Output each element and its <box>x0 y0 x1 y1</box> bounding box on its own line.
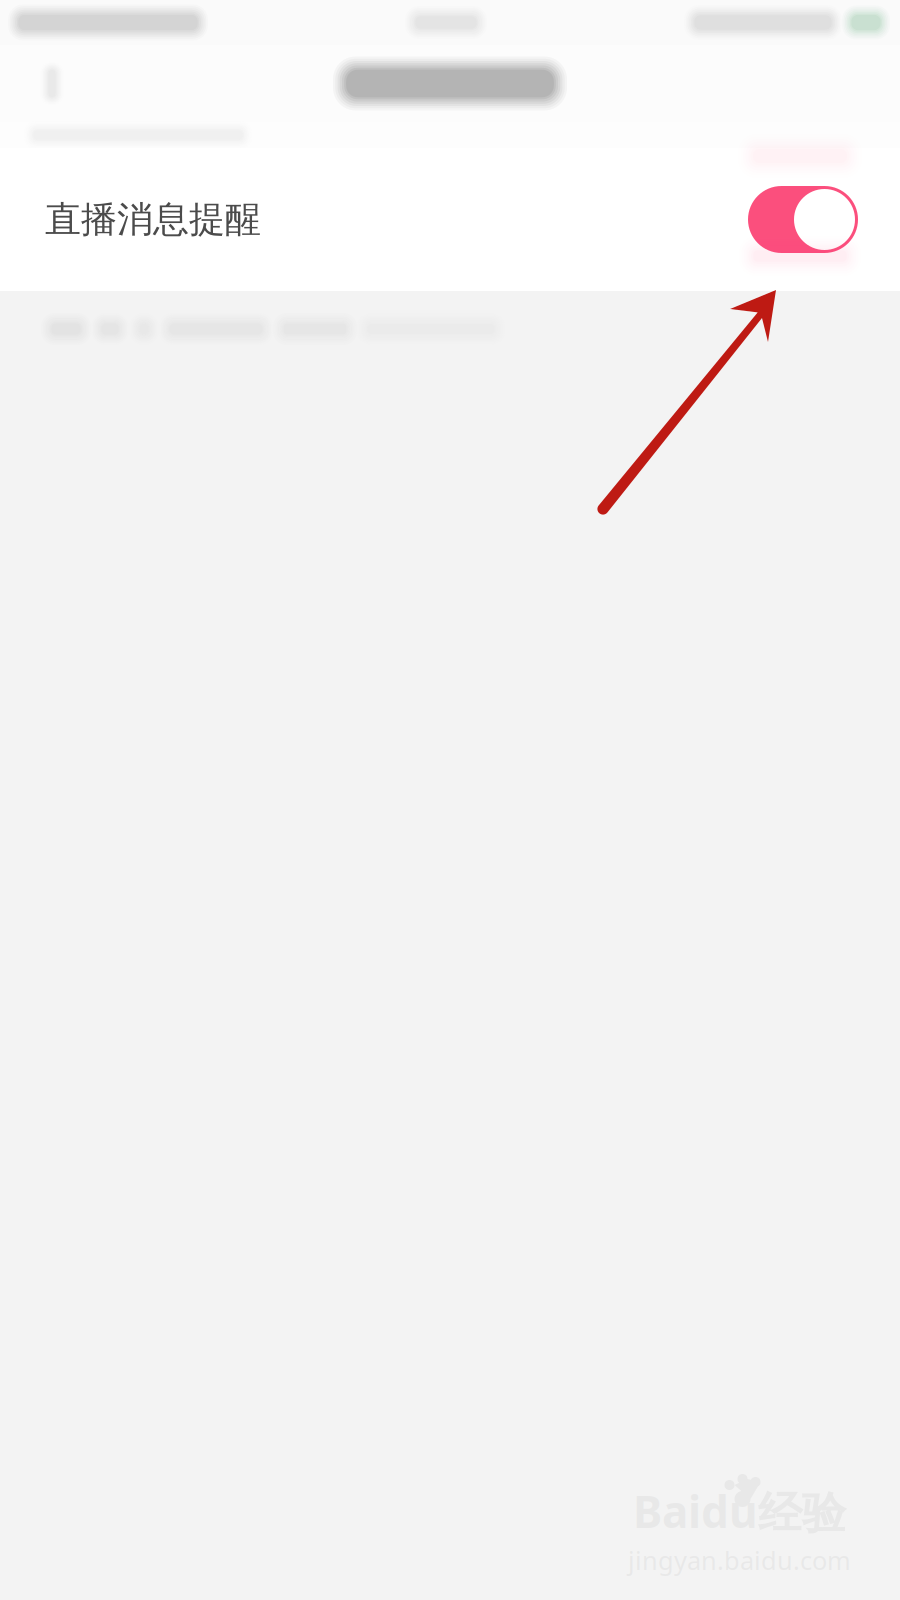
button[interactable]: 直播消息提醒 <box>0 148 900 291</box>
staticText: jingyan.baidu.com <box>628 1543 851 1577</box>
staticText: Baidu经验 <box>633 1482 846 1540</box>
button[interactable]: Back <box>24 51 80 115</box>
staticText: 直播消息提醒 <box>45 197 261 242</box>
